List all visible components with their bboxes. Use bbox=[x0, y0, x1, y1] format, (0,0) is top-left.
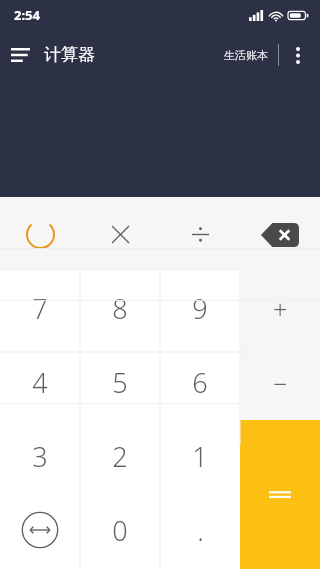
button[interactable]: 1 bbox=[160, 419, 240, 493]
button[interactable]: 6 bbox=[160, 345, 240, 419]
other: Divide bbox=[192, 226, 209, 243]
button[interactable]: . bbox=[160, 493, 240, 567]
button[interactable]: 4 bbox=[0, 345, 80, 419]
button[interactable]: − bbox=[240, 346, 320, 420]
button[interactable]: Swap bbox=[0, 493, 80, 567]
button[interactable]: Clear bbox=[0, 197, 80, 271]
staticText: 7 bbox=[32, 290, 48, 327]
other: Swap bbox=[21, 511, 59, 549]
button[interactable]: 3 bbox=[0, 419, 80, 493]
button[interactable]: 9 bbox=[160, 271, 240, 345]
staticText: 4 bbox=[32, 364, 48, 401]
other: Backspace bbox=[261, 223, 299, 247]
button[interactable]: More options bbox=[279, 36, 317, 74]
button[interactable]: Backspace bbox=[240, 197, 320, 272]
staticText: . bbox=[197, 512, 204, 549]
staticText: 3 bbox=[32, 438, 48, 475]
button[interactable]: Divide bbox=[160, 197, 240, 271]
staticText: 1 bbox=[192, 438, 208, 475]
button[interactable]: 生活账本 bbox=[218, 40, 274, 70]
button[interactable]: 5 bbox=[80, 345, 160, 419]
other: Clear bbox=[27, 221, 54, 248]
staticText: 0 bbox=[112, 512, 128, 549]
button[interactable]: + bbox=[240, 272, 320, 346]
staticText: 9 bbox=[192, 290, 208, 327]
staticText: 计算器 bbox=[44, 44, 95, 65]
other: Multiply bbox=[112, 226, 129, 243]
staticText: 2 bbox=[112, 438, 128, 475]
button[interactable]: Menu bbox=[0, 35, 40, 75]
staticText: 生活账本 bbox=[224, 48, 268, 62]
staticText: 6 bbox=[192, 364, 208, 401]
staticText: 2:54 bbox=[14, 6, 40, 24]
button[interactable]: 2 bbox=[80, 419, 160, 493]
button[interactable]: Equals bbox=[240, 420, 320, 569]
staticText: + bbox=[273, 292, 288, 326]
staticText: 5 bbox=[112, 364, 128, 401]
button[interactable]: 0 bbox=[80, 493, 160, 567]
staticText: 8 bbox=[112, 290, 128, 327]
button[interactable]: Multiply bbox=[80, 197, 160, 271]
staticText: − bbox=[273, 366, 288, 400]
button[interactable]: 7 bbox=[0, 271, 80, 345]
button[interactable]: 8 bbox=[80, 271, 160, 345]
